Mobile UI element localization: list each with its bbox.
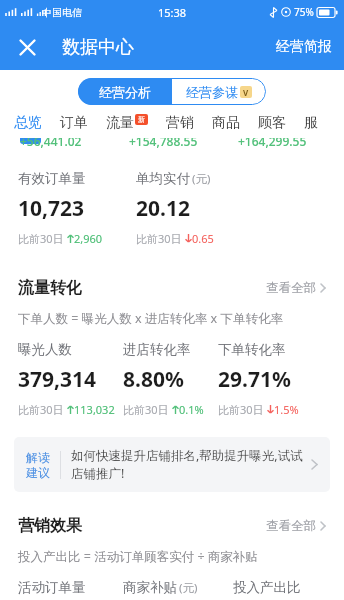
button[interactable]: 经营分析 bbox=[78, 78, 172, 105]
staticText: 379,314 bbox=[18, 365, 97, 394]
staticText: 查看全部 bbox=[266, 280, 316, 296]
staticText: 113,032 bbox=[74, 402, 115, 417]
staticText: 商家补贴 bbox=[123, 579, 177, 596]
staticText: 经营参谋 bbox=[186, 84, 238, 100]
staticText: 新 bbox=[138, 115, 145, 124]
staticText: 数据中心 bbox=[62, 36, 134, 59]
staticText: 如何快速提升店铺排名,帮助提升曝光,试试店铺推广! bbox=[71, 447, 305, 482]
staticText: 29.71% bbox=[218, 365, 291, 394]
staticText: 服 bbox=[304, 114, 318, 132]
staticText: 比前30日 bbox=[18, 402, 67, 417]
staticText: 经营分析 bbox=[99, 84, 151, 100]
button[interactable]: 查看全部 bbox=[262, 276, 330, 300]
staticText: 流量转化 bbox=[18, 278, 82, 298]
staticText: (元) bbox=[179, 580, 198, 596]
staticText: 活动订单量 bbox=[18, 579, 86, 596]
staticText: 20.12 bbox=[136, 194, 190, 223]
staticText: 订单 bbox=[60, 114, 88, 132]
staticText: 营销效果 bbox=[18, 516, 82, 536]
button[interactable]: 顾客 bbox=[258, 114, 304, 132]
staticText: 2,960 bbox=[74, 231, 103, 246]
staticText: (元) bbox=[192, 171, 211, 187]
staticText: 曝光人数 bbox=[18, 341, 72, 358]
staticText: 比前30日 bbox=[218, 402, 267, 417]
staticText: 总览 bbox=[14, 114, 42, 132]
staticText: 中国电信 bbox=[42, 6, 82, 19]
staticText: 解读 bbox=[26, 450, 50, 465]
staticText: 营销 bbox=[166, 114, 194, 132]
button[interactable]: 关闭 bbox=[12, 32, 42, 62]
staticText: 投入产出比 bbox=[233, 579, 301, 596]
button[interactable]: 流量 bbox=[106, 114, 166, 132]
button[interactable]: 商品 bbox=[212, 114, 258, 132]
staticText: V bbox=[243, 87, 249, 98]
staticText: 投入产出比 = 活动订单顾客实付 ÷ 商家补贴 bbox=[18, 548, 258, 565]
staticText: +164,299.55 bbox=[238, 138, 307, 149]
staticText: 75% bbox=[294, 5, 314, 19]
button[interactable]: 经营参谋 bbox=[172, 78, 266, 105]
button[interactable]: 总览 bbox=[14, 114, 60, 132]
staticText: 有效订单量 bbox=[18, 170, 86, 187]
staticText: 比前30日 bbox=[136, 231, 185, 246]
staticText: 比前30日 bbox=[18, 231, 67, 246]
staticText: +56,441.02 bbox=[20, 138, 82, 149]
button[interactable]: 订单 bbox=[60, 114, 106, 132]
staticText: 流量 bbox=[106, 114, 134, 132]
staticText: 15:38 bbox=[158, 5, 187, 20]
staticText: 比前30日 bbox=[123, 402, 172, 417]
staticText: 下单转化率 bbox=[218, 341, 286, 358]
staticText: 单均实付 bbox=[136, 170, 190, 187]
staticText: 建议 bbox=[26, 465, 50, 480]
staticText: 经营简报 bbox=[276, 38, 332, 56]
button[interactable]: 解读 bbox=[14, 437, 330, 492]
staticText: 商品 bbox=[212, 114, 240, 132]
button[interactable]: 营销 bbox=[166, 114, 212, 132]
staticText: +154,788.55 bbox=[129, 138, 198, 149]
staticText: 查看全部 bbox=[266, 518, 316, 534]
staticText: 10,723 bbox=[18, 194, 85, 223]
staticText: 顾客 bbox=[258, 114, 286, 132]
staticText: 8.80% bbox=[123, 365, 184, 394]
staticText: 0.1% bbox=[179, 402, 204, 417]
staticText: 0.65 bbox=[192, 231, 214, 246]
staticText: 下单人数 = 曝光人数 x 进店转化率 x 下单转化率 bbox=[18, 310, 283, 327]
staticText: 1.5% bbox=[274, 402, 299, 417]
staticText: 进店转化率 bbox=[123, 341, 191, 358]
button[interactable]: 服 bbox=[304, 114, 336, 132]
button[interactable]: 经营简报 bbox=[264, 30, 344, 64]
button[interactable]: 查看全部 bbox=[262, 514, 330, 538]
